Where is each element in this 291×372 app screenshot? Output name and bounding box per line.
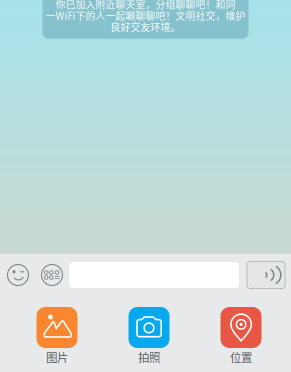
button[interactable]: Emoji [7,264,29,286]
staticText: 图片 [46,349,68,365]
button[interactable]: 位置 [195,307,287,364]
staticText: 良好交友环境。 [110,20,180,34]
staticText: 位置 [230,349,252,365]
button[interactable]: 图片 [11,307,103,364]
button[interactable]: 拍照 [103,307,195,364]
button[interactable]: Stickers [41,264,63,286]
staticText: 拍照 [138,349,160,365]
staticText: 你已加入附近聊天室，分组聊聊吧！和同 [55,0,235,11]
button[interactable]: Voice message [247,261,285,288]
staticText: 一WiFi下的人一起唰聊聊吧！文明社交，维护 [45,8,245,23]
